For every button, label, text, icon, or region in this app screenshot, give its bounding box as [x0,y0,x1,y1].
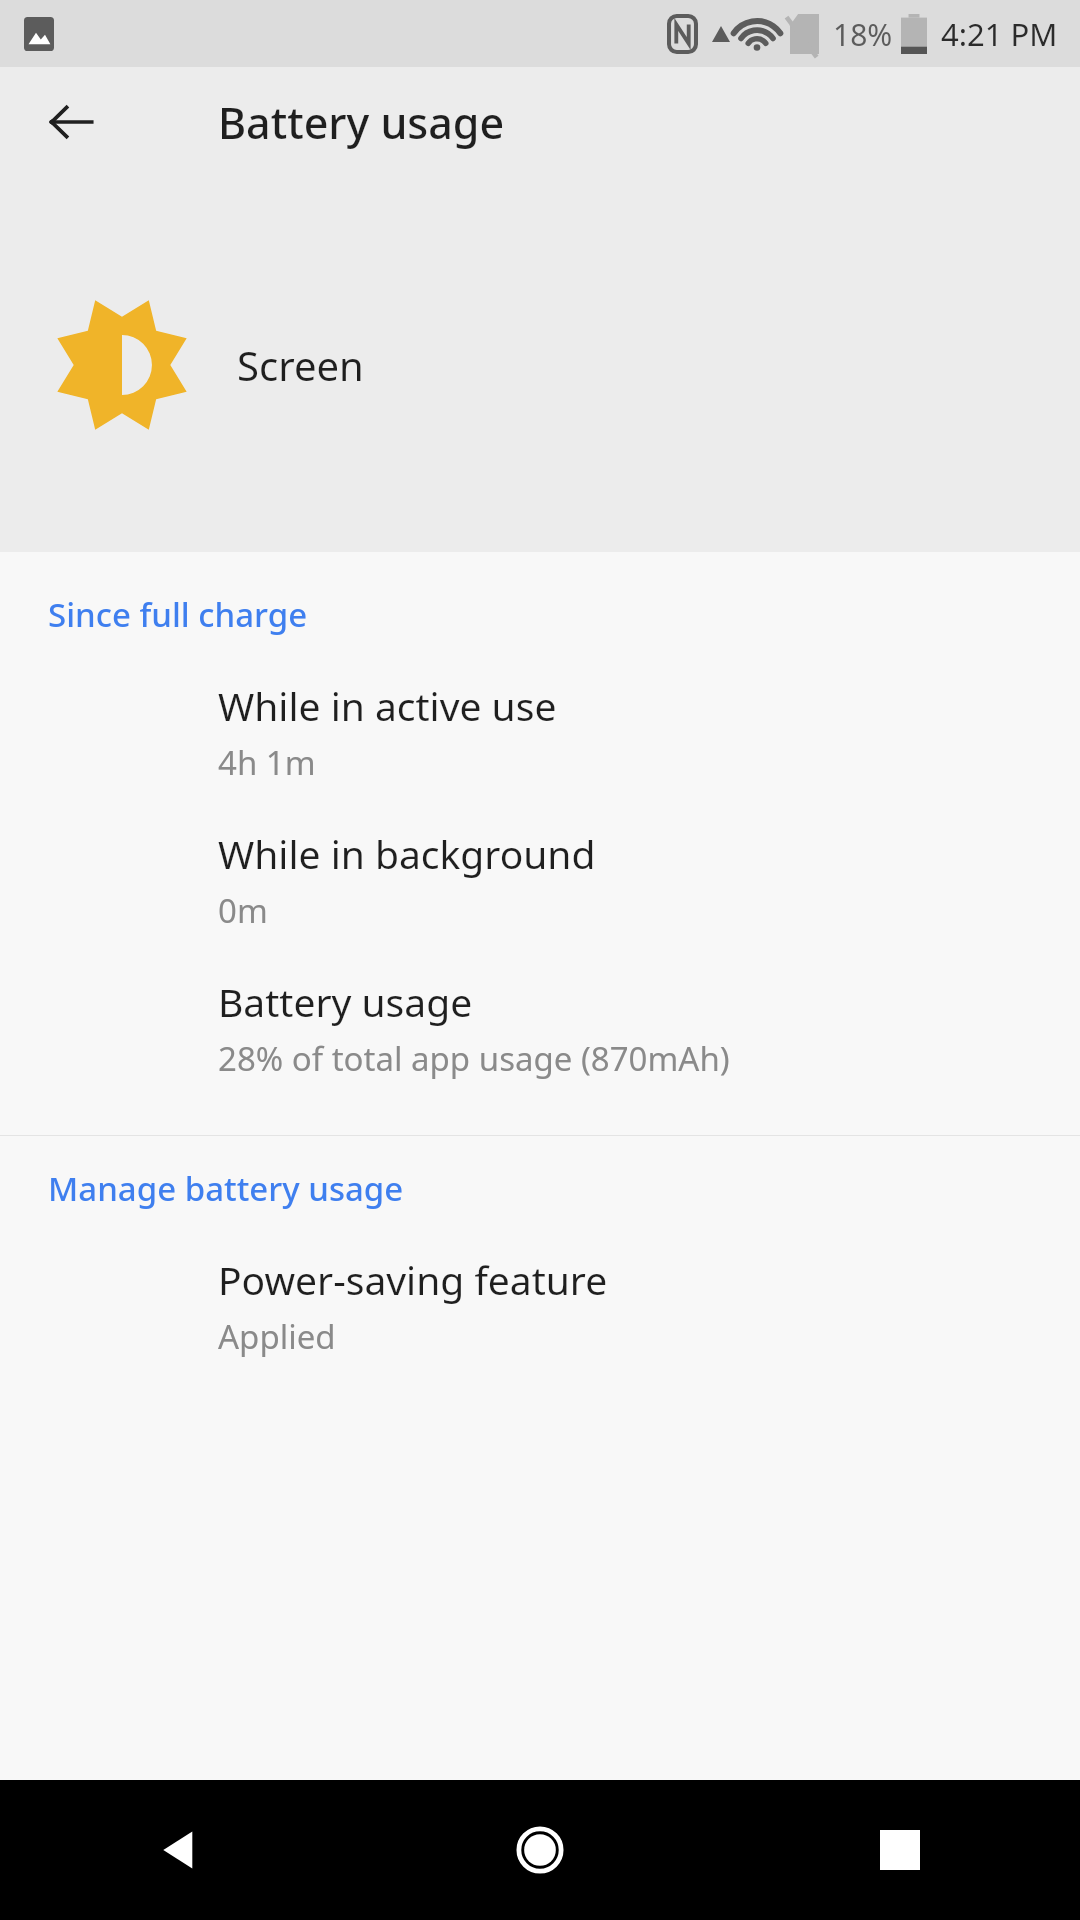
button[interactable]: While in active use [0,665,1080,813]
staticText: While in background [218,827,596,880]
staticText: Applied [218,1314,336,1359]
staticText: Power-saving feature [218,1253,608,1306]
staticText: Manage battery usage [48,1166,404,1211]
button[interactable]: Power-saving feature [0,1239,1080,1387]
staticText: Since full charge [48,592,308,637]
staticText: 18% [833,14,893,55]
staticText: Screen [237,338,364,392]
button[interactable]: Battery usage [0,961,1080,1109]
button[interactable]: Back [0,1780,360,1920]
staticText: Battery usage [218,93,505,152]
staticText: Battery usage [218,975,473,1028]
staticText: 4h 1m [218,740,316,785]
staticText: 28% of total app usage (870mAh) [218,1036,730,1081]
button[interactable]: Back [28,79,114,165]
staticText: While in active use [218,679,557,732]
staticText: 0m [218,888,268,933]
button[interactable]: Home [360,1780,720,1920]
staticText: 4:21 PM [941,13,1058,55]
button[interactable]: While in background [0,813,1080,961]
button[interactable]: Recent apps [720,1780,1080,1920]
